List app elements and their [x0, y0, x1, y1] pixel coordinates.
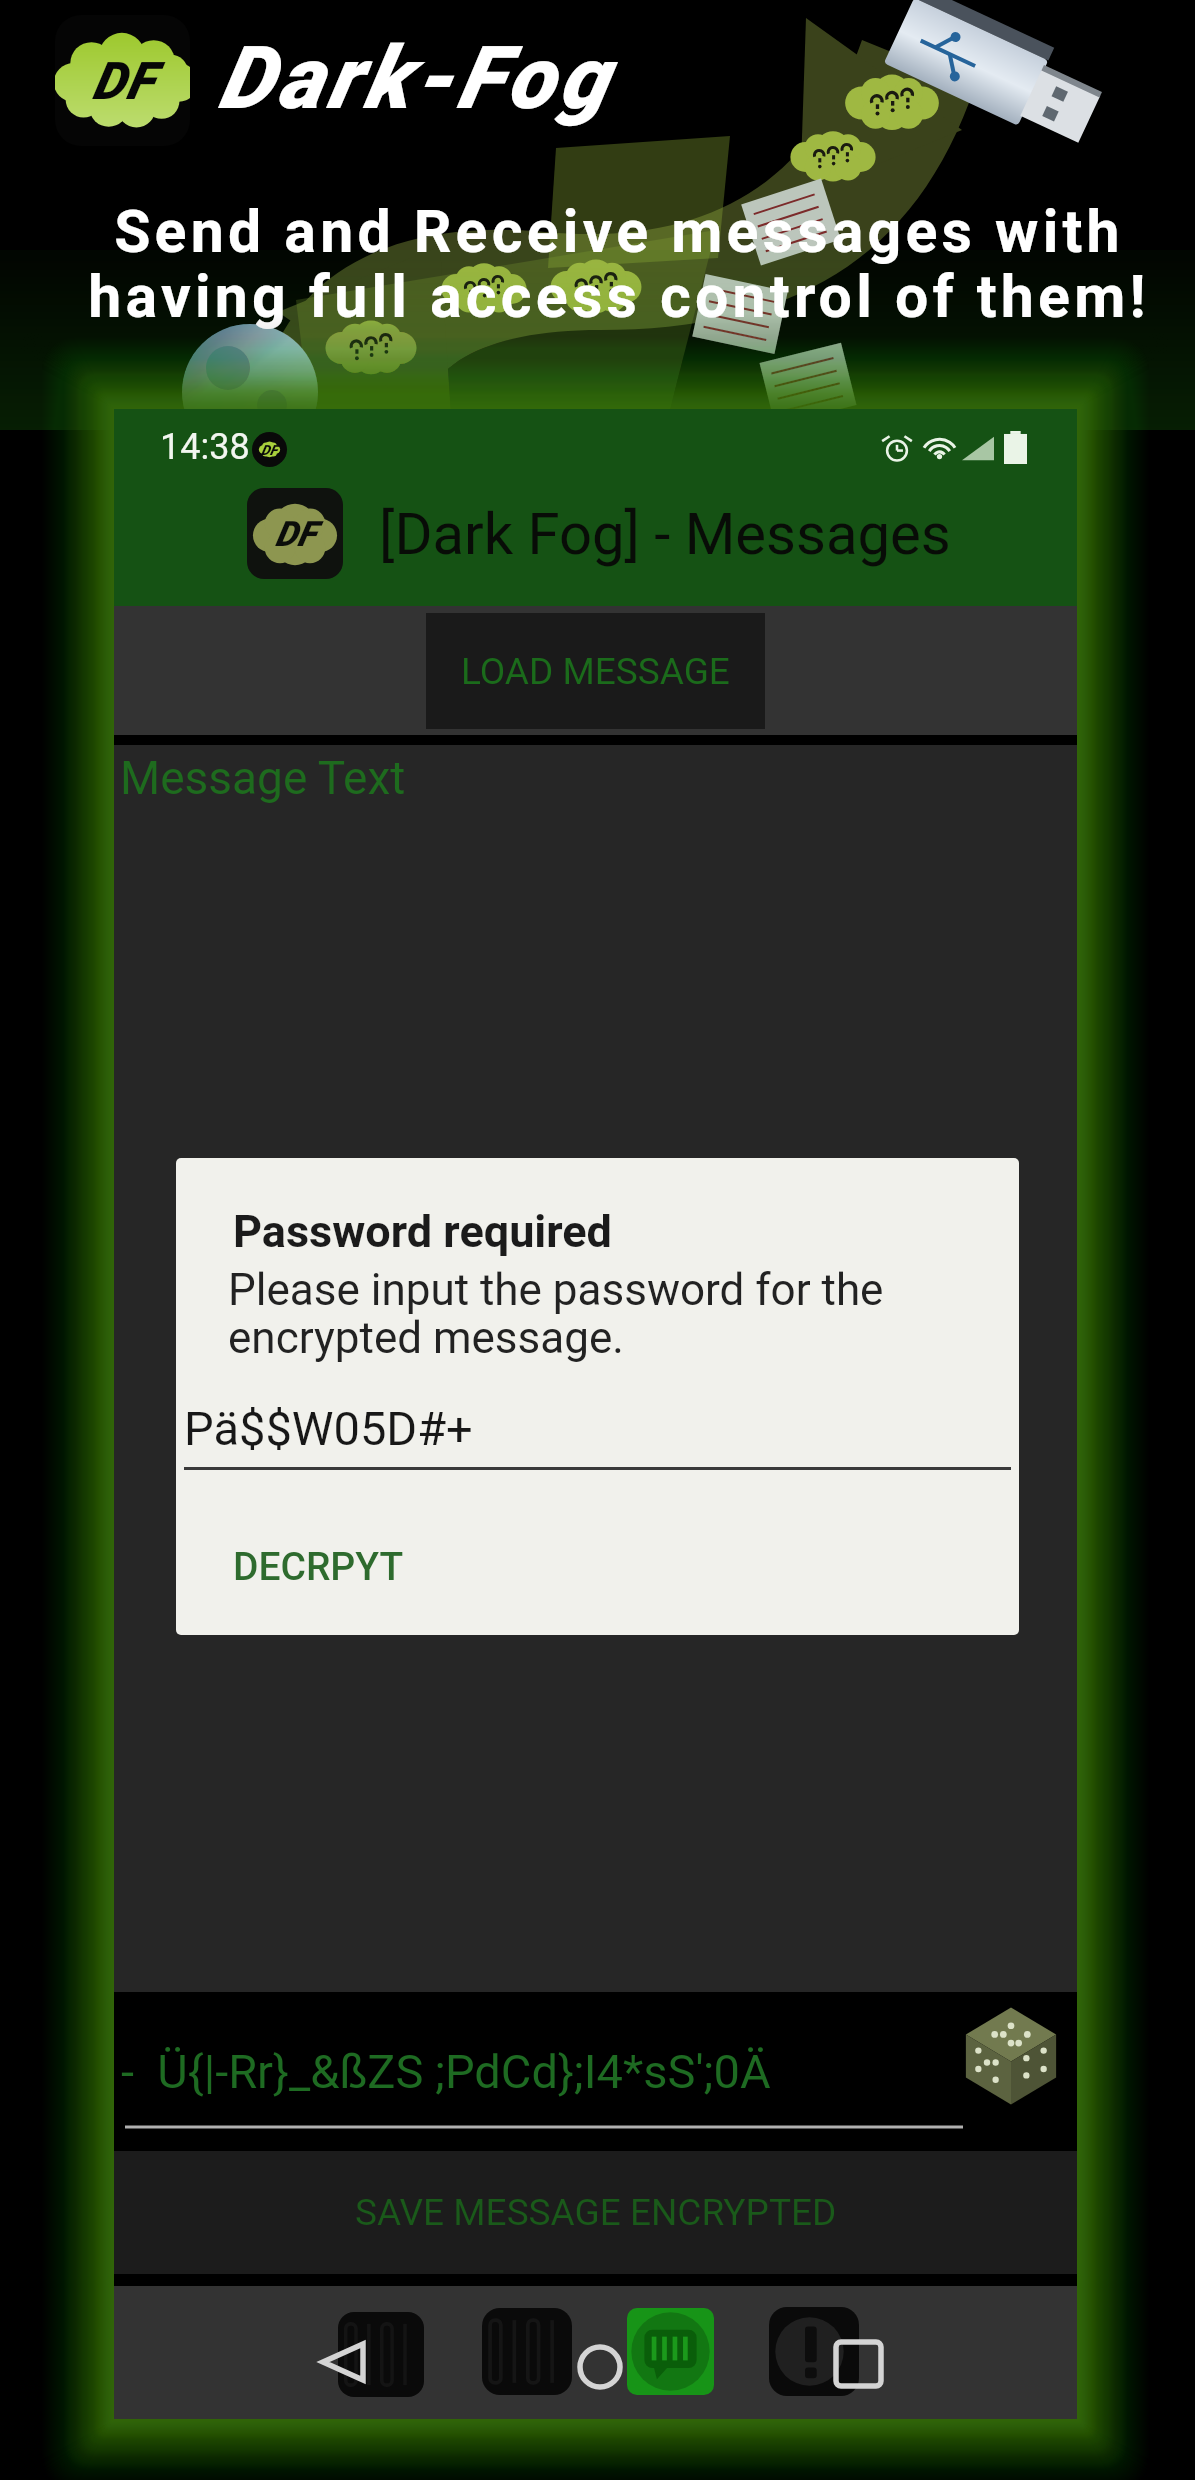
staticText: LOAD MESSAGE	[461, 650, 730, 693]
staticText: DECRPYT	[233, 1544, 404, 1590]
button[interactable]: Back	[320, 2341, 366, 2383]
button[interactable]: Decode app	[338, 2312, 424, 2397]
button[interactable]: SAVE MESSAGE ENCRYPTED	[114, 2151, 1077, 2274]
button[interactable]: Alerts	[769, 2307, 859, 2396]
staticText: Message Text	[120, 751, 406, 805]
staticText: Send and Receive messages with having fu…	[88, 197, 1150, 332]
staticText: Password required	[233, 1205, 612, 1258]
staticText: - Ü{|-Rr}_&ßZS ;PdCd};I4*sS';0Ä	[121, 2044, 771, 2099]
staticText: Dark-Fog	[218, 27, 612, 129]
button[interactable]: Messages	[627, 2308, 714, 2395]
staticText: 14:38	[160, 426, 250, 468]
staticText: SAVE MESSAGE ENCRYPTED	[355, 2191, 837, 2234]
button[interactable]: LOAD MESSAGE	[426, 613, 765, 729]
staticText: DF	[275, 514, 316, 555]
button[interactable]: DECRPYT	[233, 1544, 404, 1590]
button[interactable]: Binary app	[482, 2308, 572, 2395]
button[interactable]: Recents	[836, 2342, 881, 2386]
staticText: Please input the password for the encryp…	[228, 1264, 884, 1364]
button[interactable]: Home	[577, 2344, 623, 2390]
staticText: DF	[92, 51, 155, 112]
staticText: Pä$$W05D#+	[184, 1401, 473, 1456]
staticText: DF	[261, 442, 278, 458]
staticText: [Dark Fog] - Messages	[379, 500, 951, 568]
